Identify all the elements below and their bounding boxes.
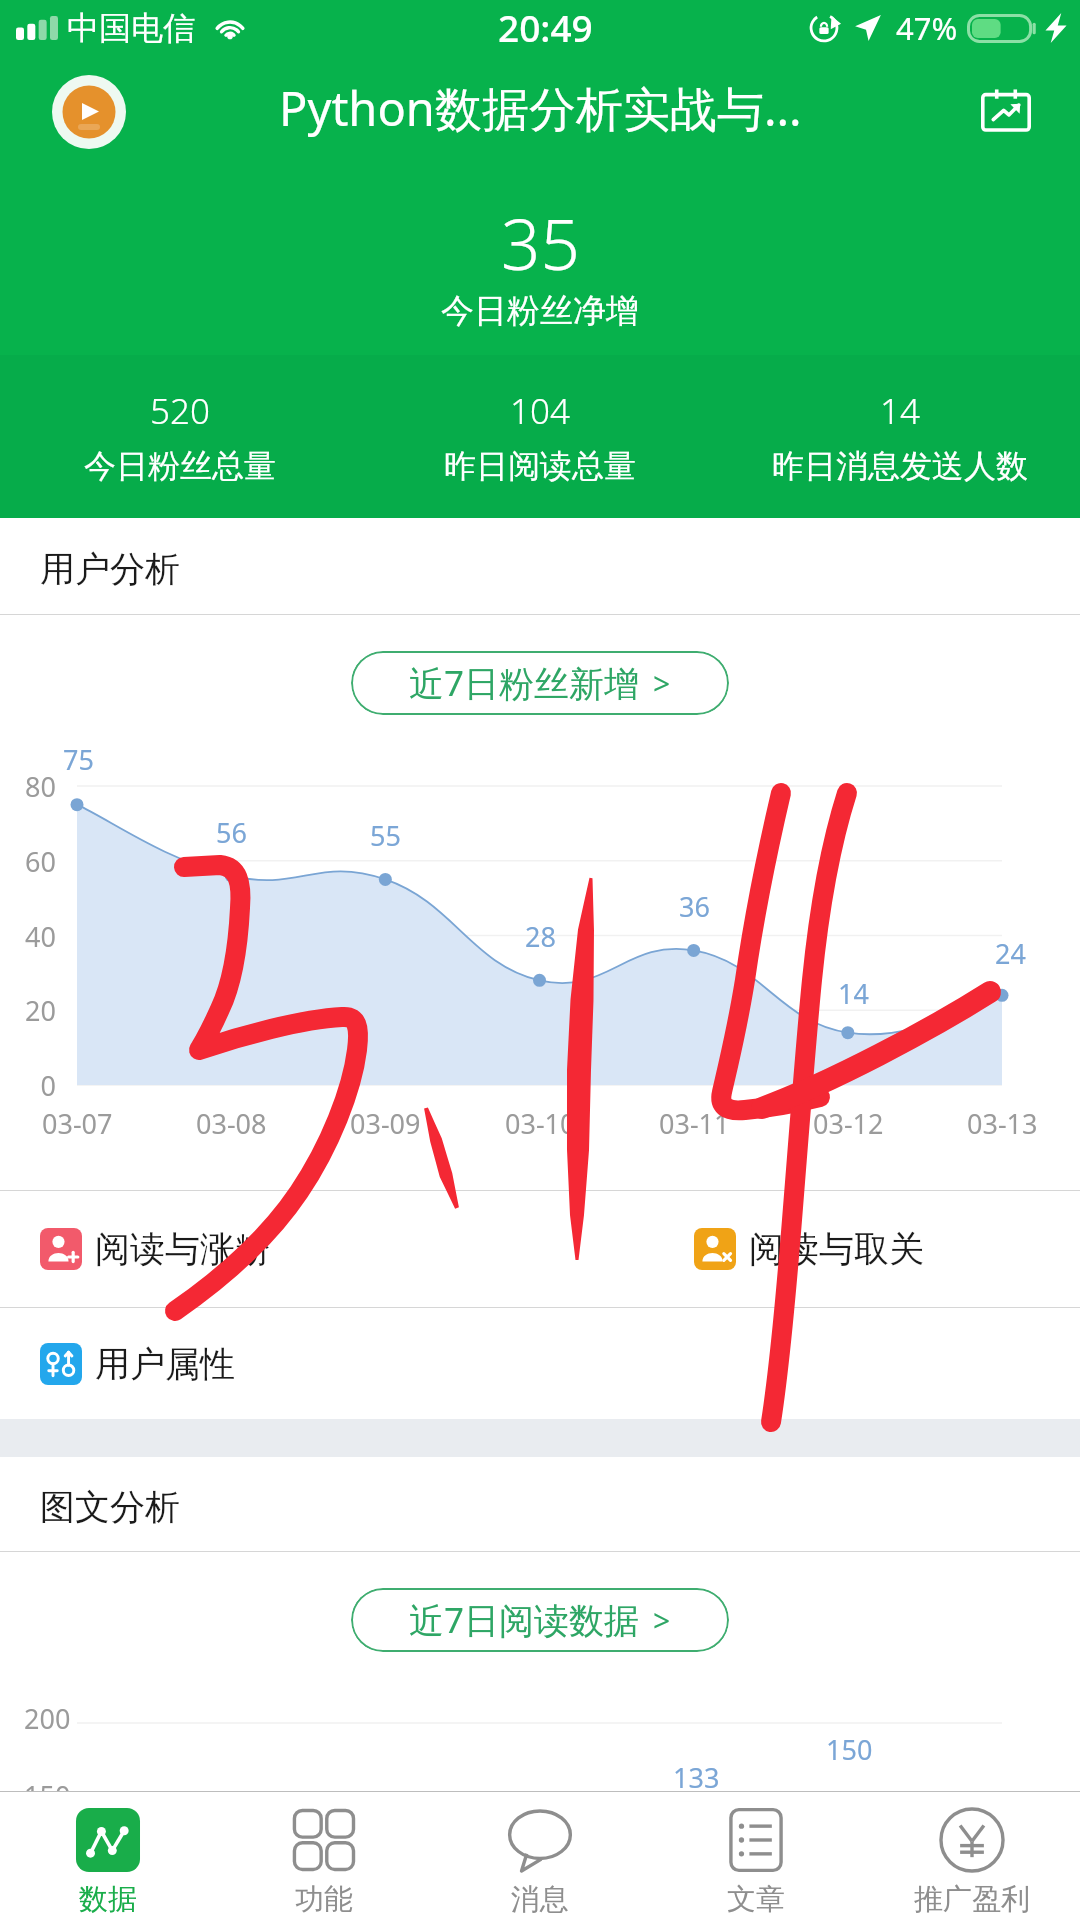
button[interactable]: 104 [360, 355, 720, 518]
staticText: 昨日阅读总量 [444, 446, 636, 486]
staticText: 推广盈利 [914, 1881, 1030, 1918]
staticText: 今日粉丝净增 [441, 290, 639, 332]
staticText: 133 [673, 1759, 720, 1796]
staticText: 用户分析 [40, 547, 180, 591]
staticText: 28 [525, 918, 556, 955]
staticText: 阅读与取关 [749, 1227, 924, 1271]
button[interactable]: 阅读与取关 [540, 1191, 1080, 1307]
staticText: 150 [24, 1777, 71, 1814]
staticText: 03-12 [813, 1105, 884, 1142]
staticText: 47% [896, 7, 958, 49]
staticText: 60 [25, 843, 56, 880]
staticText: 03-09 [350, 1105, 421, 1142]
staticText: > [653, 1600, 671, 1641]
staticText: 03-08 [196, 1105, 267, 1142]
staticText: 图文分析 [40, 1485, 180, 1529]
button[interactable]: 近7日粉丝新增 [351, 651, 729, 715]
button[interactable]: 数据 [0, 1792, 216, 1920]
staticText: 数据 [79, 1881, 137, 1918]
staticText: 55 [370, 817, 401, 854]
staticText: 近7日阅读数据 [409, 1596, 640, 1644]
staticText: 20:49 [498, 2, 593, 52]
staticText: 03-07 [42, 1105, 113, 1142]
staticText: 消息 [511, 1881, 569, 1918]
button[interactable]: Account avatar [52, 75, 126, 149]
staticText: > [653, 663, 671, 704]
staticText: 24 [995, 935, 1026, 972]
staticText: 14 [838, 975, 869, 1012]
staticText: 用户属性 [95, 1342, 235, 1386]
button[interactable]: 14 [720, 355, 1080, 518]
staticText: 0 [40, 1067, 56, 1104]
button[interactable]: 阅读与涨粉 [0, 1191, 540, 1307]
staticText: 近7日粉丝新增 [409, 659, 640, 707]
staticText: 520 [150, 387, 210, 435]
button[interactable]: Data board [977, 79, 1035, 137]
staticText: 文章 [727, 1881, 785, 1918]
button[interactable]: 功能 [216, 1792, 432, 1920]
button[interactable]: 近7日阅读数据 [351, 1588, 729, 1652]
button[interactable]: 用户属性 [0, 1308, 540, 1419]
staticText: 150 [826, 1731, 873, 1768]
staticText: Python数据分析实战与... [279, 76, 802, 140]
staticText: 40 [25, 918, 56, 955]
button[interactable]: 消息 [432, 1792, 648, 1920]
staticText: 36 [679, 888, 710, 925]
staticText: 20 [25, 992, 56, 1029]
button[interactable]: 文章 [648, 1792, 864, 1920]
button[interactable]: 推广盈利 [864, 1792, 1080, 1920]
staticText: 阅读与涨粉 [95, 1227, 270, 1271]
staticText: 今日粉丝总量 [84, 446, 276, 486]
staticText: 03-13 [967, 1105, 1038, 1142]
staticText: 35 [501, 196, 580, 290]
staticText: 104 [510, 387, 570, 435]
staticText: 中国电信 [67, 8, 195, 48]
staticText: 功能 [295, 1881, 353, 1918]
staticText: 200 [24, 1700, 71, 1737]
staticText: 14 [880, 387, 920, 435]
staticText: 56 [216, 814, 247, 851]
staticText: 80 [25, 768, 56, 805]
staticText: 75 [63, 741, 94, 778]
button[interactable]: 520 [0, 355, 360, 518]
staticText: 03-11 [659, 1105, 730, 1142]
staticText: 03-10 [505, 1105, 576, 1142]
staticText: 昨日消息发送人数 [772, 446, 1028, 486]
